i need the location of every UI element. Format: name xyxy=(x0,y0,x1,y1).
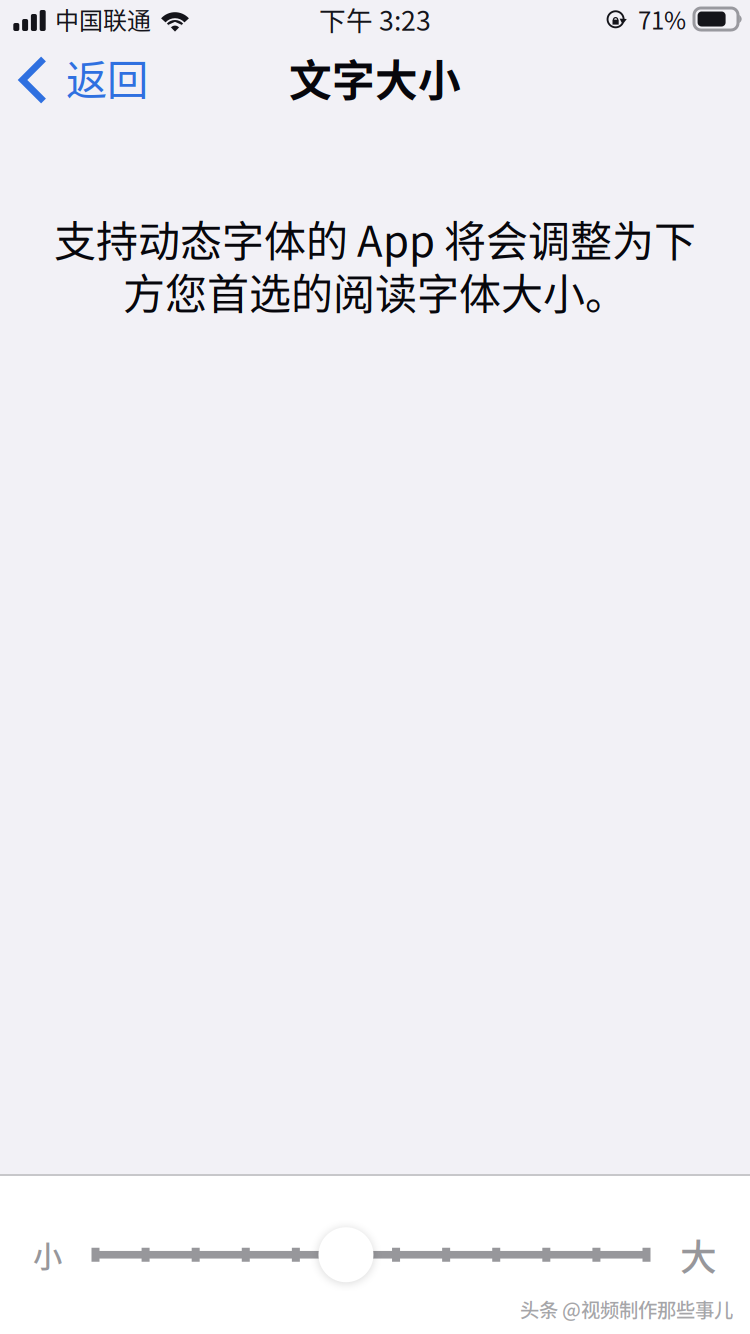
staticText: 小 xyxy=(33,1233,62,1276)
staticText: 方您首选的阅读字体大小。 xyxy=(123,261,627,322)
staticText: 支持动态字体的 App 将会调整为下 xyxy=(54,208,696,269)
staticText: 文字大小 xyxy=(289,47,461,109)
staticText: 71% xyxy=(638,2,686,36)
staticText: 下午 3:23 xyxy=(319,0,431,38)
staticText: 头条 @视频制作那些事儿 xyxy=(520,1295,733,1323)
button[interactable]: 大 xyxy=(680,1228,717,1281)
staticText: 大 xyxy=(680,1228,717,1281)
staticText: 返回 xyxy=(66,47,148,107)
button[interactable]: 小 xyxy=(33,1233,62,1276)
staticText: 中国联通 xyxy=(55,2,151,36)
button[interactable]: 返回 xyxy=(0,40,162,120)
